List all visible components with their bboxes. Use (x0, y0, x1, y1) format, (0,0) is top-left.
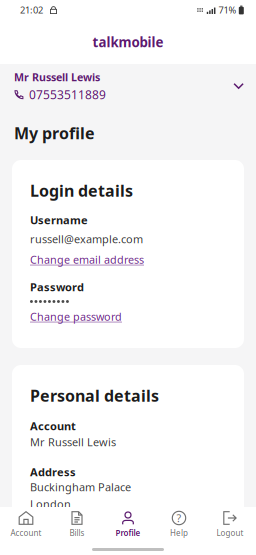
staticText: ? (176, 511, 181, 525)
staticText: My profile (14, 122, 95, 144)
button[interactable]: Change email address (30, 253, 144, 266)
staticText: Password (30, 280, 84, 294)
staticText: Change password (30, 309, 122, 324)
staticText: Help (170, 528, 188, 538)
staticText: Username (30, 213, 88, 227)
button[interactable]: Bills (51, 509, 102, 540)
staticText: Account (10, 528, 41, 538)
button[interactable]: Account (0, 509, 51, 540)
staticText: talkmobile (92, 33, 163, 51)
staticText: Mr Russell Lewis (30, 435, 116, 449)
button[interactable]: Profile (102, 509, 153, 540)
staticText: 21:02 (20, 4, 43, 16)
staticText: russell@example.com (30, 232, 143, 246)
staticText: Bills (69, 528, 84, 538)
staticText: 07553511889 (29, 86, 106, 102)
staticText: London (30, 497, 71, 511)
staticText: Buckingham Palace (30, 480, 131, 494)
staticText: Address (30, 465, 76, 479)
staticText: Login details (30, 180, 133, 201)
staticText: Account (30, 419, 76, 433)
button[interactable]: Mr Russell Lewis (0, 64, 256, 108)
staticText: Logout (216, 528, 243, 538)
button[interactable]: Change password (30, 310, 122, 323)
button[interactable]: Logout (204, 509, 255, 540)
staticText: Personal details (30, 385, 159, 406)
staticText: Mr Russell Lewis (14, 70, 100, 84)
button[interactable]: ? (153, 509, 204, 540)
staticText: Change email address (30, 252, 144, 267)
staticText: 71% (219, 4, 237, 16)
staticText: Profile (115, 528, 140, 538)
